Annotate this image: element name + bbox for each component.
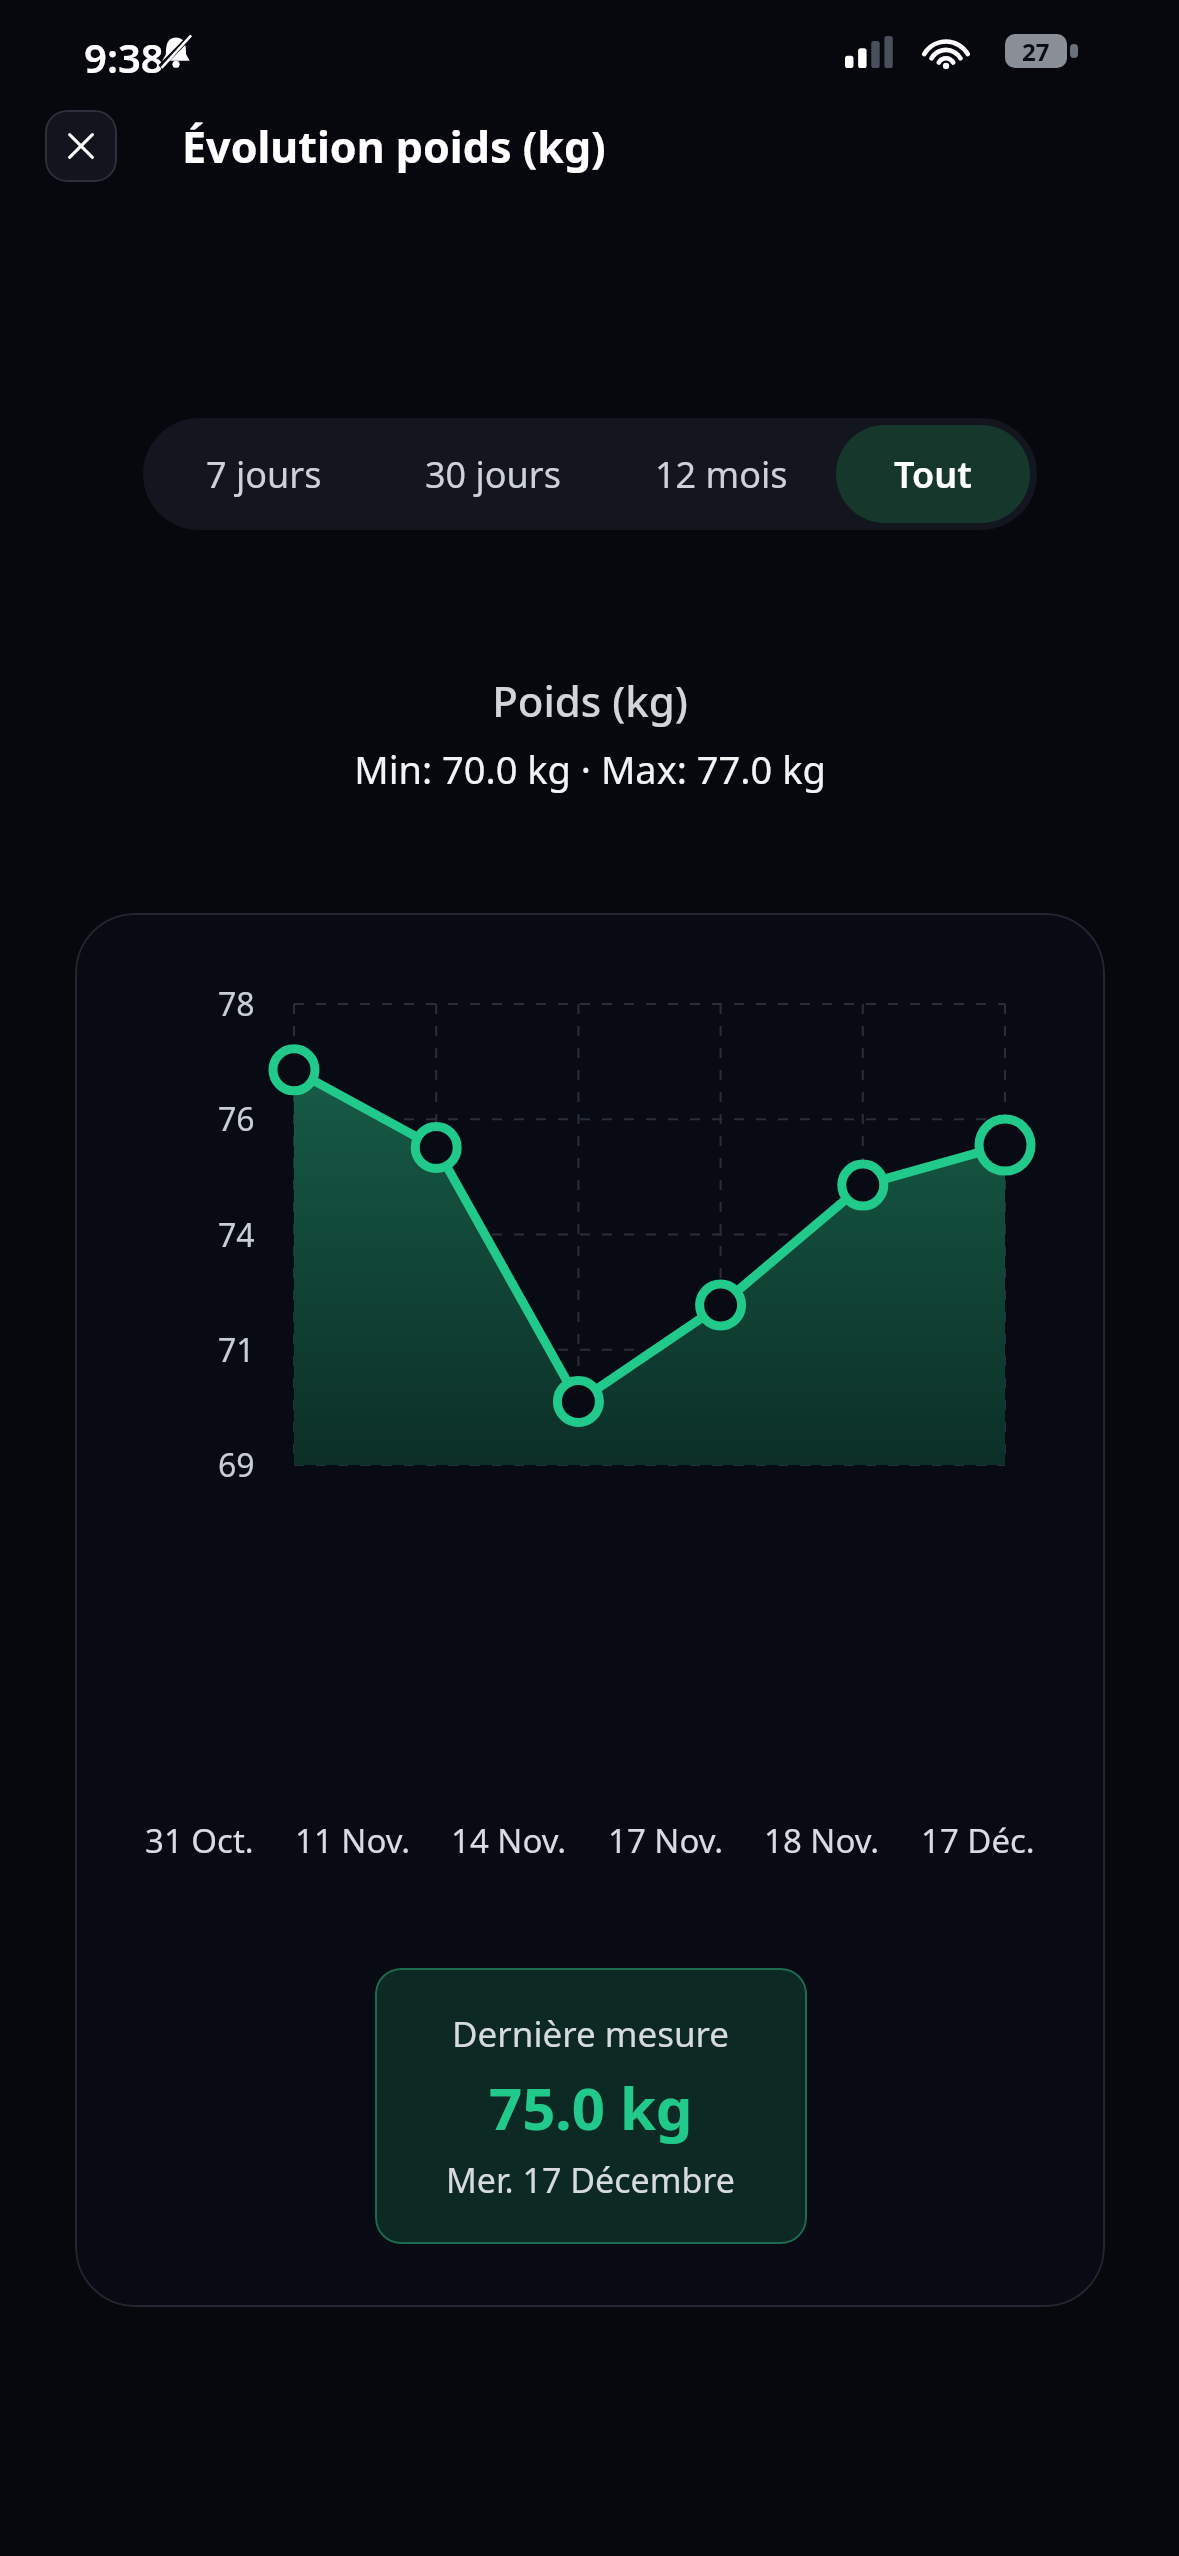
staticText: 11 Nov. <box>295 1818 411 1863</box>
staticText: 74 <box>218 1213 255 1257</box>
staticText: 71 <box>218 1328 255 1372</box>
button[interactable]: 7 jours <box>150 425 378 523</box>
staticText: 17 Déc. <box>921 1818 1035 1863</box>
staticText: 17 Nov. <box>608 1818 724 1863</box>
staticText: Mer. 17 Décembre <box>446 2157 736 2203</box>
staticText: 78 <box>218 982 255 1026</box>
staticText: 7 jours <box>206 450 322 499</box>
staticText: Dernière mesure <box>452 2010 730 2058</box>
staticText: Tout <box>894 450 972 499</box>
staticText: 9:38 <box>84 30 164 84</box>
staticText: 75.0 kg <box>489 2068 693 2147</box>
staticText: 31 Oct. <box>145 1818 254 1863</box>
button[interactable]: 30 jours <box>378 425 607 523</box>
staticText: Poids (kg) <box>492 672 688 729</box>
staticText: 18 Nov. <box>764 1818 880 1863</box>
staticText: 30 jours <box>425 450 561 499</box>
staticText: 69 <box>218 1443 255 1487</box>
staticText: Évolution poids (kg) <box>182 117 606 176</box>
button[interactable]: Tout <box>836 425 1030 523</box>
staticText: 14 Nov. <box>451 1818 567 1863</box>
button[interactable]: Dernière mesure <box>375 1968 807 2244</box>
staticText: Min: 70.0 kg · Max: 77.0 kg <box>354 743 826 795</box>
staticText: 12 mois <box>655 450 788 499</box>
staticText: 76 <box>218 1097 255 1141</box>
button[interactable]: Fermer <box>45 110 117 182</box>
button[interactable]: 12 mois <box>607 425 836 523</box>
staticText: 27 <box>1022 35 1050 68</box>
